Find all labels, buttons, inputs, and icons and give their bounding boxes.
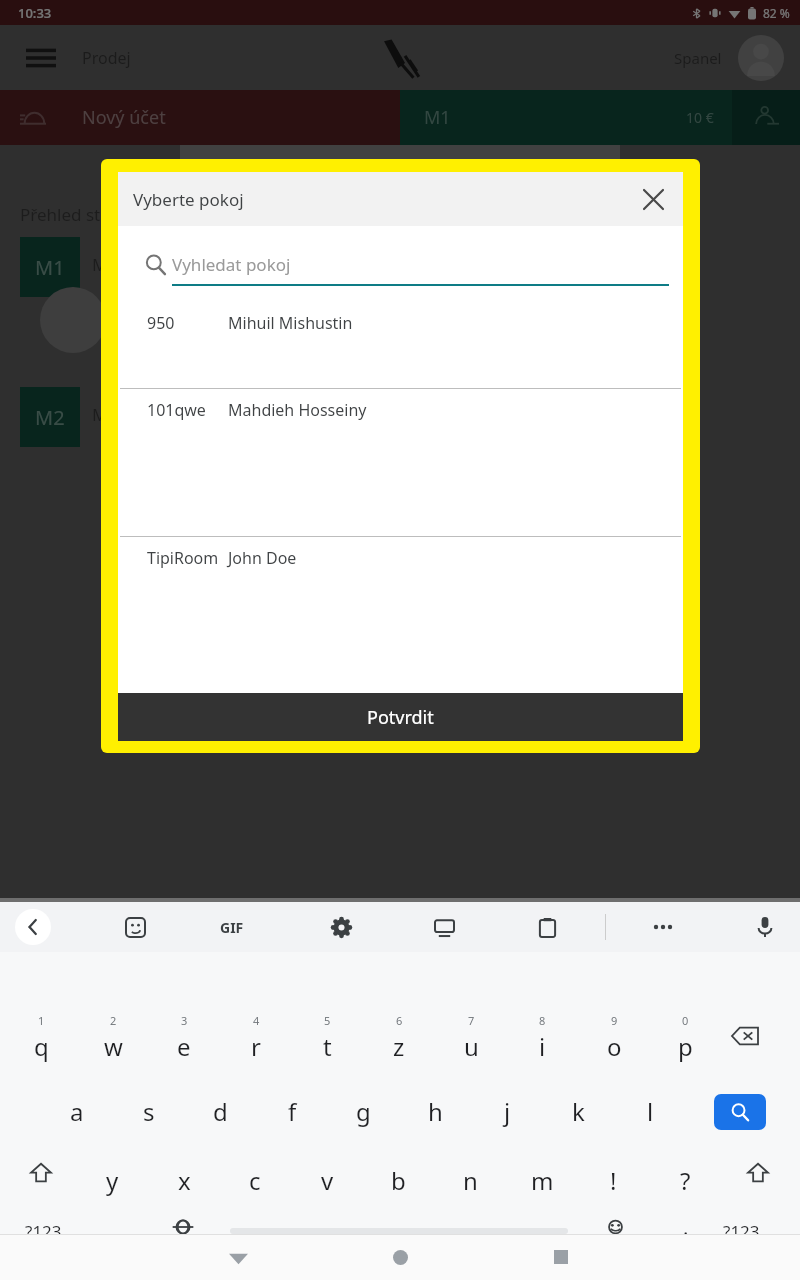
- button[interactable]: m: [507, 1150, 577, 1210]
- staticText: k: [572, 1095, 585, 1128]
- staticText: ?: [680, 1164, 691, 1197]
- button[interactable]: Změnit jazyk: [160, 1220, 206, 1234]
- button[interactable]: n: [435, 1150, 505, 1210]
- button[interactable]: 5: [292, 1004, 362, 1072]
- staticText: 101qwe: [147, 399, 206, 421]
- button[interactable]: Shift: [735, 1150, 781, 1196]
- button[interactable]: TipiRoom: [118, 537, 683, 682]
- staticText: TipiRoom: [147, 547, 219, 569]
- button[interactable]: Hlasové zadávání: [747, 909, 783, 945]
- staticText: M: [92, 253, 108, 276]
- button[interactable]: ?123: [714, 1220, 768, 1234]
- staticText: y: [106, 1164, 119, 1197]
- button[interactable]: a: [42, 1080, 112, 1142]
- staticText: f: [288, 1095, 297, 1128]
- staticText: 10 €: [686, 108, 714, 127]
- button[interactable]: Vyhledat pokoj: [172, 241, 669, 287]
- button[interactable]: ?123: [18, 1220, 68, 1234]
- button[interactable]: Přehled: [541, 1237, 581, 1277]
- staticText: Vyberte pokoj: [133, 188, 244, 211]
- button[interactable]: c: [220, 1150, 290, 1210]
- staticText: M: [92, 403, 108, 426]
- staticText: Mahdieh Hosseiny: [228, 399, 367, 421]
- button[interactable]: ·: [664, 1220, 708, 1234]
- staticText: ?123: [25, 1220, 62, 1234]
- button[interactable]: Domů: [380, 1237, 420, 1277]
- staticText: 3: [181, 1013, 188, 1028]
- staticText: Kartou: [533, 678, 588, 701]
- button[interactable]: k: [543, 1080, 613, 1142]
- button[interactable]: Zavřít: [633, 179, 673, 219]
- button[interactable]: Emoji: [592, 1220, 638, 1234]
- button[interactable]: l: [615, 1080, 685, 1142]
- staticText: r: [251, 1030, 261, 1063]
- staticText: M2: [35, 404, 65, 431]
- button[interactable]: Klávesnice: [426, 909, 462, 945]
- button[interactable]: j: [472, 1080, 542, 1142]
- staticText: 6: [396, 1013, 403, 1028]
- button[interactable]: 8: [507, 1004, 577, 1072]
- staticText: n: [463, 1164, 478, 1197]
- staticText: John Doe: [228, 547, 297, 569]
- button[interactable]: Shift: [18, 1150, 64, 1196]
- button[interactable]: GIF: [220, 918, 244, 937]
- staticText: v: [321, 1164, 334, 1197]
- button[interactable]: 950: [118, 302, 683, 389]
- staticText: j: [504, 1095, 511, 1128]
- staticText: ?123: [723, 1220, 760, 1234]
- staticText: m: [531, 1164, 554, 1197]
- button[interactable]: h: [400, 1080, 470, 1142]
- button[interactable]: ?: [650, 1150, 720, 1210]
- staticText: w: [104, 1030, 123, 1063]
- button[interactable]: !: [578, 1150, 648, 1210]
- button[interactable]: Nálepky: [117, 909, 153, 945]
- staticText: M1: [35, 254, 65, 281]
- staticText: t: [323, 1030, 332, 1063]
- button[interactable]: Schránka: [529, 909, 565, 945]
- button[interactable]: Zpět: [218, 1237, 258, 1277]
- button[interactable]: v: [292, 1150, 362, 1210]
- staticText: !: [610, 1164, 617, 1197]
- staticText: 0: [682, 1013, 689, 1028]
- button[interactable]: 6: [364, 1004, 434, 1072]
- button[interactable]: Nastavení: [323, 909, 359, 945]
- staticText: Prodej: [82, 47, 131, 69]
- button[interactable]: 1: [6, 1004, 76, 1072]
- staticText: s: [143, 1095, 155, 1128]
- button[interactable]: b: [363, 1150, 433, 1210]
- button[interactable]: s: [114, 1080, 184, 1142]
- button[interactable]: Potvrdit: [118, 693, 683, 741]
- staticText: l: [647, 1095, 654, 1128]
- button[interactable]: x: [149, 1150, 219, 1210]
- staticText: z: [393, 1030, 405, 1063]
- button[interactable]: 4: [221, 1004, 291, 1072]
- button[interactable]: 2: [78, 1004, 148, 1072]
- button[interactable]: Více: [645, 909, 681, 945]
- button[interactable]: d: [185, 1080, 255, 1142]
- staticText: o: [607, 1030, 622, 1063]
- button[interactable]: f: [257, 1080, 327, 1142]
- staticText: d: [213, 1095, 228, 1128]
- button[interactable]: g: [328, 1080, 398, 1142]
- button[interactable]: 0: [650, 1004, 720, 1072]
- staticText: 950: [147, 312, 175, 334]
- staticText: 10:33: [18, 4, 52, 22]
- staticText: 82 %: [763, 5, 790, 21]
- staticText: Potvrdit: [367, 705, 434, 730]
- staticText: Vyhledat pokoj: [172, 253, 291, 276]
- staticText: 1: [38, 1013, 45, 1028]
- staticText: 5: [324, 1013, 331, 1028]
- button[interactable]: 9: [579, 1004, 649, 1072]
- button[interactable]: 3: [149, 1004, 219, 1072]
- staticText: 9: [611, 1013, 618, 1028]
- button[interactable]: Smazat: [723, 1014, 767, 1058]
- button[interactable]: 7: [436, 1004, 506, 1072]
- button[interactable]: Hledat: [714, 1094, 766, 1130]
- button[interactable]: y: [77, 1150, 147, 1210]
- button[interactable]: Zpět: [15, 909, 51, 945]
- button[interactable]: 101qwe: [118, 389, 683, 537]
- staticText: 4: [253, 1013, 260, 1028]
